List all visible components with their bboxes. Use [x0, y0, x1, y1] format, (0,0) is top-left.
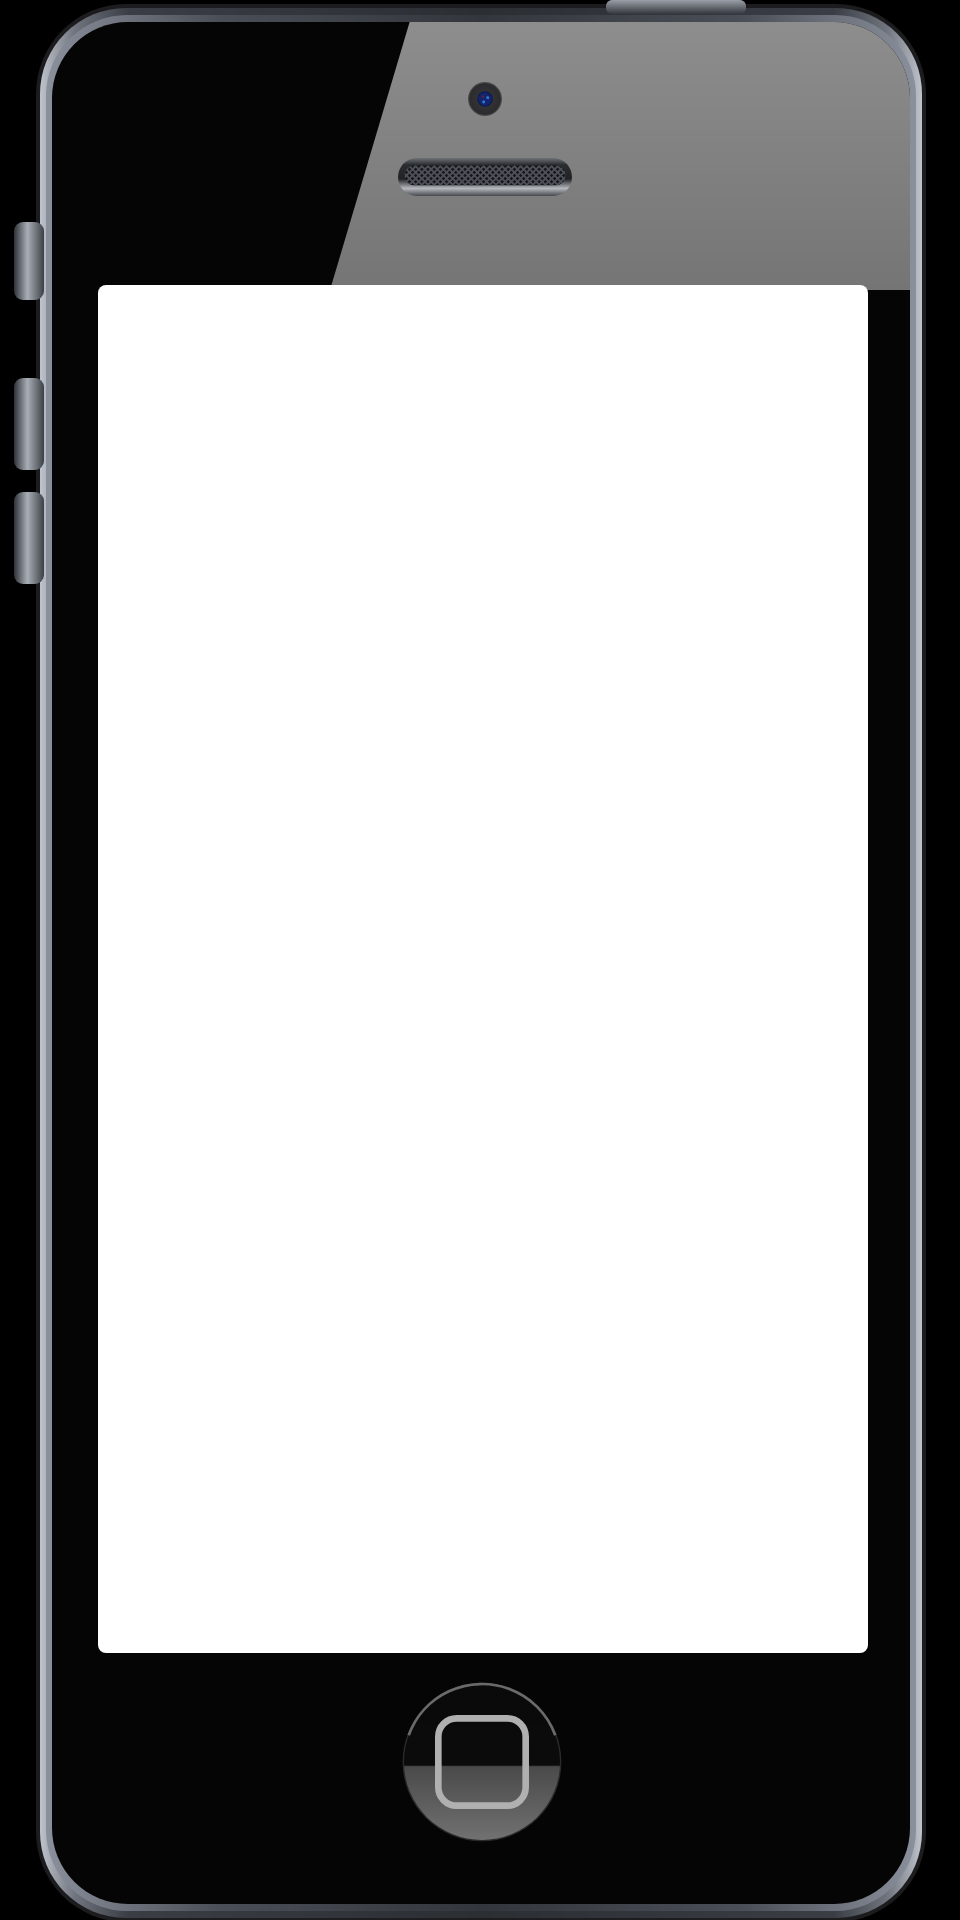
- button[interactable]: iPhone device mockup: [0, 0, 960, 1920]
